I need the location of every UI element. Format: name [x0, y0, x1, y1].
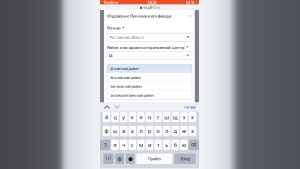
button[interactable]: щ — [171, 112, 179, 122]
button[interactable]: ч — [120, 140, 127, 150]
staticText: Район или административный центр * — [107, 45, 188, 50]
button[interactable]: и — [146, 140, 153, 150]
button[interactable]: н — [146, 112, 153, 122]
button[interactable]: Белокалитвинский район — [107, 91, 192, 99]
button[interactable]: й — [103, 112, 110, 122]
staticText: э — [191, 127, 194, 135]
button[interactable]: Ростовская область — [107, 33, 192, 41]
staticText: л — [165, 127, 168, 135]
button[interactable]: с — [128, 140, 136, 150]
button[interactable]: А — [107, 52, 192, 60]
staticText: ⇧ — [103, 142, 107, 148]
button[interactable]: е — [137, 112, 145, 122]
button[interactable]: к — [128, 112, 136, 122]
staticText: 123 — [105, 157, 111, 160]
button[interactable]: Предыдущее поле — [102, 102, 112, 111]
staticText: в — [122, 127, 125, 135]
button[interactable]: Следующее поле — [112, 102, 122, 111]
button[interactable]: Пробел — [136, 154, 172, 164]
staticText: ч — [122, 141, 125, 148]
staticText: ф — [104, 127, 108, 135]
button[interactable]: Багаевский район — [107, 82, 192, 91]
staticText: щ — [173, 114, 178, 121]
staticText: ◍ — [117, 156, 122, 162]
staticText: ⌫ — [191, 143, 197, 147]
button[interactable]: ⬤ — [126, 154, 134, 164]
button[interactable]: р — [146, 126, 153, 136]
staticText: ы — [113, 127, 117, 135]
staticText: р — [148, 127, 151, 135]
staticText: Багаевский район — [110, 84, 141, 89]
staticText: д — [174, 127, 177, 135]
staticText: Регион * — [107, 25, 124, 31]
staticText: × — [189, 12, 192, 19]
staticText: Ростовская область — [109, 35, 144, 40]
button[interactable]: ь — [163, 140, 170, 150]
staticText: Ввод — [180, 156, 189, 161]
staticText: Beeline — [104, 0, 118, 5]
staticText: б — [174, 141, 177, 148]
button[interactable]: Азовский район — [107, 64, 192, 73]
staticText: ж — [182, 127, 186, 135]
button[interactable]: я — [111, 140, 119, 150]
button[interactable]: ю — [180, 140, 188, 150]
button[interactable]: х — [189, 112, 196, 122]
staticText: Аксайский район — [110, 75, 140, 80]
button[interactable]: Ввод — [174, 154, 195, 164]
staticText: Отделение Пенсионного фонда — [107, 13, 171, 18]
button[interactable]: з — [180, 112, 188, 122]
staticText: т — [157, 141, 159, 148]
button[interactable]: ж — [180, 126, 188, 136]
staticText: я — [114, 141, 117, 148]
button[interactable]: 123 — [103, 154, 113, 164]
button[interactable]: а — [128, 126, 136, 136]
button[interactable]: б — [171, 140, 179, 150]
staticText: А — [110, 53, 113, 58]
button[interactable]: ◍ — [115, 154, 124, 164]
button[interactable]: э — [189, 126, 196, 136]
button[interactable]: м — [137, 140, 145, 150]
button[interactable]: ы — [111, 126, 119, 136]
button[interactable]: п — [137, 126, 145, 136]
staticText: Готово — [183, 104, 195, 110]
staticText: о — [157, 127, 160, 135]
staticText: у — [122, 114, 125, 121]
button[interactable]: Закрыть — [188, 14, 193, 18]
staticText: Азовский район — [110, 66, 138, 71]
staticText: м — [139, 141, 143, 148]
button[interactable]: у — [120, 112, 127, 122]
staticText: ю — [182, 141, 186, 148]
button[interactable]: д — [171, 126, 179, 136]
staticText: ь — [165, 141, 168, 148]
staticText: з — [182, 114, 185, 121]
button[interactable]: ⇧ — [100, 140, 110, 150]
button[interactable]: т — [154, 140, 162, 150]
button[interactable]: в — [120, 126, 127, 136]
staticText: Белокалитвинский район — [110, 93, 153, 98]
staticText: а — [131, 127, 134, 135]
button[interactable]: о — [154, 126, 162, 136]
button[interactable]: ц — [111, 112, 119, 122]
staticText: ⬤ — [128, 156, 132, 161]
staticText: 52 % — [186, 0, 195, 5]
staticText: х — [191, 114, 194, 121]
staticText: и — [148, 141, 151, 148]
staticText: п — [139, 127, 142, 135]
staticText: н — [148, 114, 151, 121]
button[interactable]: ш — [163, 112, 170, 122]
button[interactable]: Готово — [183, 104, 195, 110]
button[interactable]: ⌫ — [189, 140, 199, 150]
staticText: ц — [114, 114, 117, 121]
staticText: к — [131, 114, 134, 121]
staticText: г — [157, 114, 159, 121]
staticText: es.pfrf.ru — [142, 5, 159, 10]
staticText: ш — [164, 114, 169, 121]
staticText: с — [131, 141, 134, 148]
staticText: 14:32 — [147, 0, 156, 5]
button[interactable]: Аксайский район — [107, 73, 192, 82]
staticText: Пробел — [148, 156, 161, 161]
button[interactable]: л — [163, 126, 170, 136]
button[interactable]: г — [154, 112, 162, 122]
staticText: е — [139, 114, 142, 121]
button[interactable]: ф — [103, 126, 110, 136]
